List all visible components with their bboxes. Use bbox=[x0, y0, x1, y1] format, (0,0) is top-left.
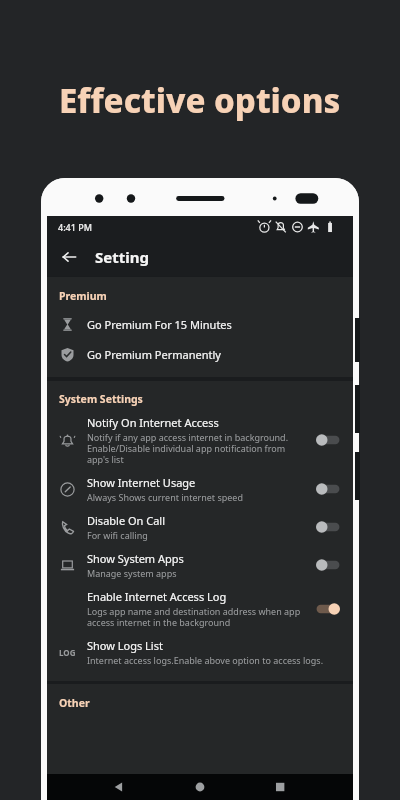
button[interactable]: Notify On Internet Access bbox=[47, 410, 353, 470]
button[interactable]: LOG bbox=[47, 633, 353, 671]
button[interactable]: Show System Apps bbox=[47, 546, 353, 584]
staticText: Premium bbox=[59, 289, 107, 303]
staticText: Show Internet Usage bbox=[87, 475, 196, 490]
staticText: Go Premium Permanently bbox=[87, 347, 221, 362]
staticText: Logs app name and destination address wh… bbox=[87, 605, 309, 628]
button[interactable]: Disable On Call bbox=[47, 508, 353, 546]
button[interactable]: Go Premium For 15 Minutes bbox=[47, 309, 353, 339]
button[interactable]: Toggle on bbox=[315, 601, 341, 617]
staticText: Manage system apps bbox=[87, 567, 177, 579]
button[interactable]: Go Premium Permanently bbox=[47, 339, 353, 369]
staticText: Effective options bbox=[59, 78, 341, 123]
button[interactable]: Toggle off bbox=[315, 432, 341, 448]
staticText: Disable On Call bbox=[87, 513, 166, 528]
staticText: Show System Apps bbox=[87, 551, 184, 566]
staticText: Show Logs List bbox=[87, 638, 163, 653]
button[interactable]: Toggle off bbox=[315, 481, 341, 497]
staticText: Other bbox=[59, 696, 90, 710]
button[interactable]: Show Internet Usage bbox=[47, 470, 353, 508]
staticText: Notify On Internet Access bbox=[87, 415, 219, 430]
staticText: Enable Internet Access Log bbox=[87, 589, 227, 604]
staticText: 4:41 PM bbox=[58, 221, 92, 233]
staticText: LOG bbox=[59, 647, 76, 658]
staticText: System Settings bbox=[59, 392, 143, 406]
staticText: Always Shows current internet speed bbox=[87, 491, 243, 503]
button[interactable]: Toggle off bbox=[315, 519, 341, 535]
staticText: Go Premium For 15 Minutes bbox=[87, 317, 232, 332]
button[interactable]: Toggle off bbox=[315, 557, 341, 573]
staticText: For wifi calling bbox=[87, 529, 148, 541]
button[interactable]: Back bbox=[53, 241, 85, 273]
staticText: Setting bbox=[95, 247, 149, 267]
staticText: Internet access logs.Enable above option… bbox=[87, 654, 324, 666]
button[interactable]: Enable Internet Access Log bbox=[47, 584, 353, 633]
staticText: Notify if any app access internet in bac… bbox=[87, 431, 309, 465]
